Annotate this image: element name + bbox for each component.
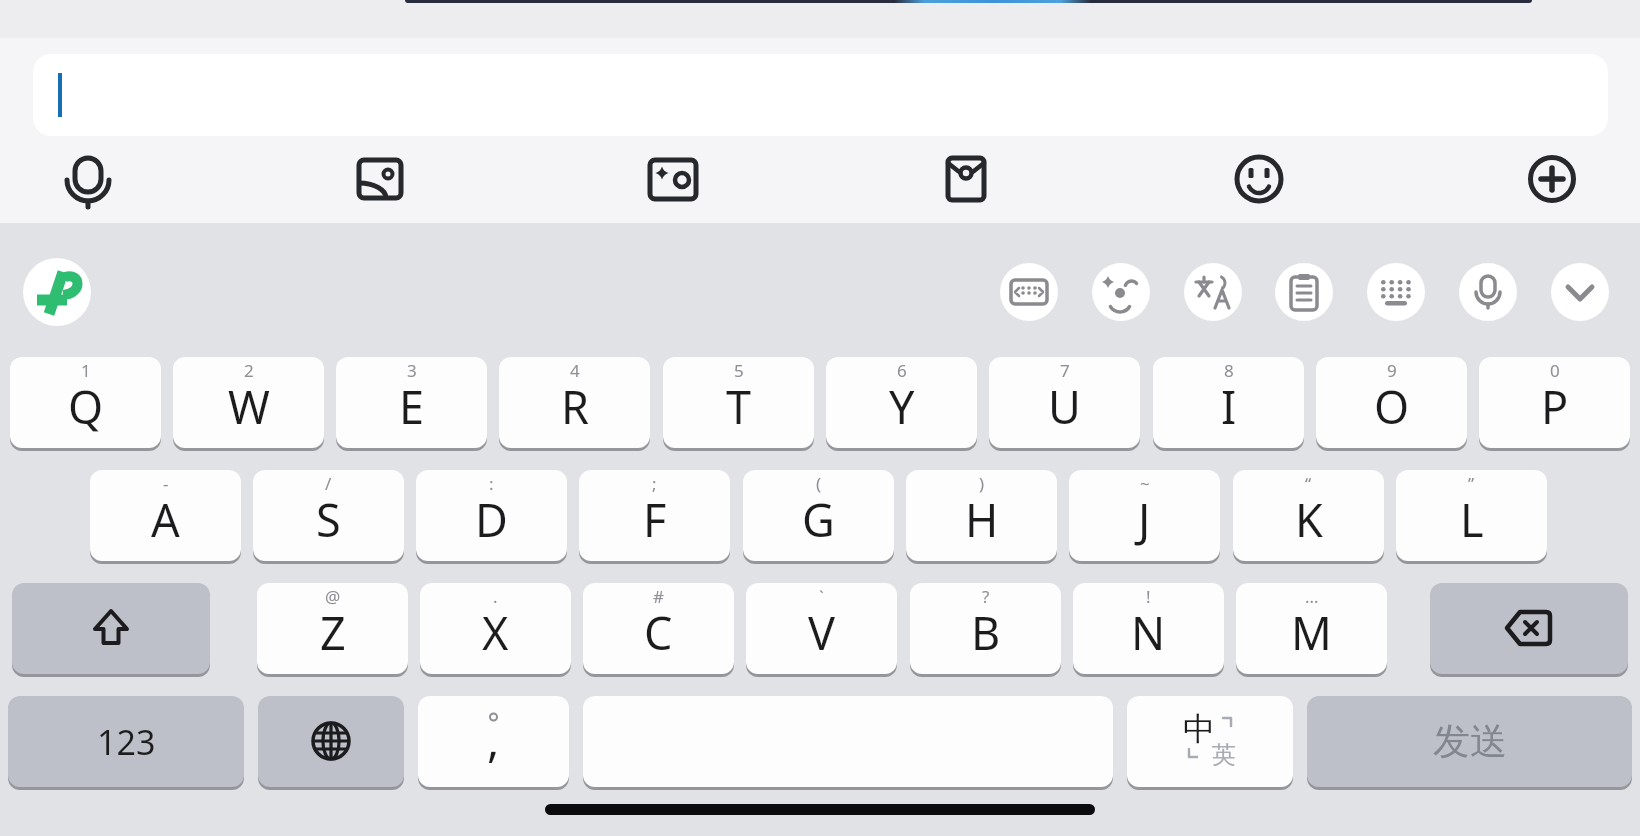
staticText: J xyxy=(1138,489,1151,550)
button[interactable]: ) xyxy=(906,470,1057,561)
button[interactable] xyxy=(1000,263,1058,321)
button[interactable]: . xyxy=(420,583,571,674)
staticText: / xyxy=(325,472,332,495)
button[interactable]: , xyxy=(418,696,569,787)
button[interactable]: 1 xyxy=(10,357,161,448)
button[interactable]: 0 xyxy=(1479,357,1630,448)
button[interactable] xyxy=(1551,263,1609,321)
staticText: U xyxy=(1048,376,1081,437)
staticText: … xyxy=(1305,585,1319,608)
button[interactable]: 123 xyxy=(8,696,244,787)
staticText: 1 xyxy=(81,359,91,382)
staticText: # xyxy=(653,585,664,608)
button[interactable]: ; xyxy=(579,470,730,561)
staticText: “ xyxy=(1305,472,1312,495)
button[interactable]: ! xyxy=(1073,583,1224,674)
staticText: 发送 xyxy=(1433,718,1507,765)
button[interactable]: ? xyxy=(910,583,1061,674)
button[interactable] xyxy=(58,149,118,209)
staticText: 7 xyxy=(1060,359,1070,382)
staticText: 3 xyxy=(407,359,417,382)
button[interactable]: … xyxy=(1236,583,1387,674)
staticText: W xyxy=(228,376,270,437)
button[interactable]: 2 xyxy=(173,357,324,448)
button[interactable]: : xyxy=(416,470,567,561)
staticText: A xyxy=(151,489,180,550)
button[interactable]: 6 xyxy=(826,357,977,448)
staticText: @ xyxy=(325,585,341,608)
staticText: 8 xyxy=(1224,359,1234,382)
staticText: E xyxy=(399,376,425,437)
staticText: . xyxy=(493,585,498,608)
staticText: F xyxy=(643,489,667,550)
staticText: 中 xyxy=(1183,709,1215,749)
button[interactable] xyxy=(1092,263,1150,321)
button[interactable]: ( xyxy=(743,470,894,561)
staticText: 123 xyxy=(97,719,156,765)
button[interactable]: 4 xyxy=(499,357,650,448)
staticText: N xyxy=(1131,602,1166,663)
staticText: - xyxy=(163,472,169,495)
staticText: L xyxy=(1460,489,1484,550)
button[interactable]: ` xyxy=(746,583,897,674)
button[interactable]: @ xyxy=(257,583,408,674)
button[interactable] xyxy=(1459,263,1517,321)
button[interactable]: ~ xyxy=(1069,470,1220,561)
staticText: 5 xyxy=(734,359,744,382)
staticText: B xyxy=(971,602,1001,663)
button[interactable]: 5 xyxy=(663,357,814,448)
button[interactable]: 发送 xyxy=(1307,696,1632,787)
button[interactable] xyxy=(1522,149,1582,209)
staticText: 9 xyxy=(1387,359,1397,382)
button[interactable]: ” xyxy=(1396,470,1547,561)
staticText: G xyxy=(802,489,835,550)
button[interactable] xyxy=(1430,583,1628,674)
staticText: O xyxy=(1374,376,1410,437)
staticText: 0 xyxy=(1550,359,1560,382)
staticText: X xyxy=(482,602,509,663)
staticText: ? xyxy=(982,585,990,608)
staticText: 英 xyxy=(1212,740,1236,770)
staticText: C xyxy=(644,602,673,663)
staticText: 2 xyxy=(244,359,254,382)
button[interactable] xyxy=(23,258,91,326)
button[interactable] xyxy=(1229,149,1289,209)
button[interactable]: “ xyxy=(1233,470,1384,561)
staticText: D xyxy=(475,489,508,550)
staticText: T xyxy=(726,376,752,437)
staticText: Y xyxy=(889,376,915,437)
button[interactable] xyxy=(33,54,1608,136)
button[interactable]: 9 xyxy=(1316,357,1467,448)
button[interactable] xyxy=(1184,263,1242,321)
staticText: H xyxy=(965,489,999,550)
button[interactable]: # xyxy=(583,583,734,674)
button[interactable]: - xyxy=(90,470,241,561)
button[interactable] xyxy=(1367,263,1425,321)
button[interactable] xyxy=(258,696,404,787)
staticText: 4 xyxy=(570,359,580,382)
button[interactable]: 7 xyxy=(989,357,1140,448)
staticText: ~ xyxy=(1140,472,1150,495)
staticText: P xyxy=(1541,376,1569,437)
staticText: M xyxy=(1291,602,1332,663)
button[interactable] xyxy=(12,583,210,674)
button[interactable] xyxy=(1275,263,1333,321)
button[interactable] xyxy=(350,149,410,209)
button[interactable]: 3 xyxy=(336,357,487,448)
staticText: ) xyxy=(979,472,985,495)
button[interactable]: / xyxy=(253,470,404,561)
button[interactable] xyxy=(936,149,996,209)
staticText: , xyxy=(487,708,500,771)
button[interactable] xyxy=(643,149,703,209)
staticText: R xyxy=(561,376,589,437)
staticText: : xyxy=(489,472,494,495)
button[interactable]: 中 xyxy=(1127,696,1293,787)
staticText: K xyxy=(1295,489,1323,550)
staticText: ” xyxy=(1468,472,1475,495)
button[interactable]: 8 xyxy=(1153,357,1304,448)
staticText: Q xyxy=(68,376,104,437)
staticText: ! xyxy=(1146,585,1151,608)
staticText: ` xyxy=(819,585,824,608)
staticText: ; xyxy=(652,472,657,495)
